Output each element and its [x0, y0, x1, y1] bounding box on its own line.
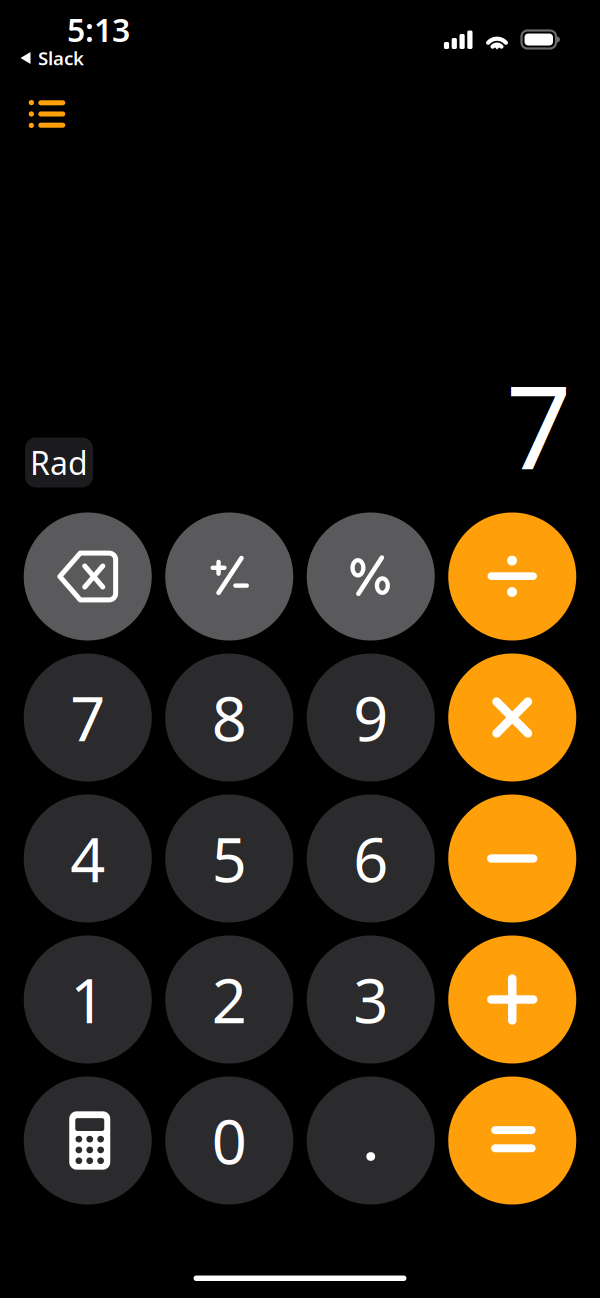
button[interactable]: 0 [165, 1076, 293, 1204]
button[interactable]: Divide [448, 512, 576, 640]
staticText: 8 [212, 677, 247, 758]
button[interactable]: Plus minus [165, 512, 293, 640]
button[interactable]: Subtract [448, 794, 576, 922]
button[interactable]: Percent [307, 512, 435, 640]
button[interactable]: 3 [307, 935, 435, 1063]
staticText: 5:13 [67, 8, 130, 51]
button[interactable]: Calculator [24, 1076, 152, 1204]
staticText: Slack [38, 46, 84, 70]
staticText: Rad [30, 441, 88, 484]
button[interactable]: 6 [307, 794, 435, 922]
button[interactable]: Equals [448, 1076, 576, 1204]
button[interactable]: Delete [24, 512, 152, 640]
button[interactable]: Slack [0, 47, 600, 69]
button[interactable]: 2 [165, 935, 293, 1063]
button[interactable]: 8 [165, 653, 293, 781]
button[interactable]: 7 [24, 653, 152, 781]
button[interactable]: Decimal point [307, 1076, 435, 1204]
button[interactable]: 1 [24, 935, 152, 1063]
staticText: 6 [353, 818, 388, 899]
staticText: 2 [212, 959, 247, 1040]
staticText: 5 [212, 818, 247, 899]
button[interactable]: Multiply [448, 653, 576, 781]
staticText: 9 [353, 677, 388, 758]
button[interactable]: History [18, 89, 76, 139]
staticText: 4 [70, 818, 105, 899]
staticText: 7 [506, 348, 572, 501]
button[interactable]: 5 [165, 794, 293, 922]
button[interactable]: Add [448, 935, 576, 1063]
staticText: 1 [70, 959, 105, 1040]
staticText: 3 [353, 959, 388, 1040]
staticText: 0 [212, 1100, 247, 1181]
button[interactable]: 9 [307, 653, 435, 781]
button[interactable]: 4 [24, 794, 152, 922]
staticText: 7 [70, 677, 105, 758]
